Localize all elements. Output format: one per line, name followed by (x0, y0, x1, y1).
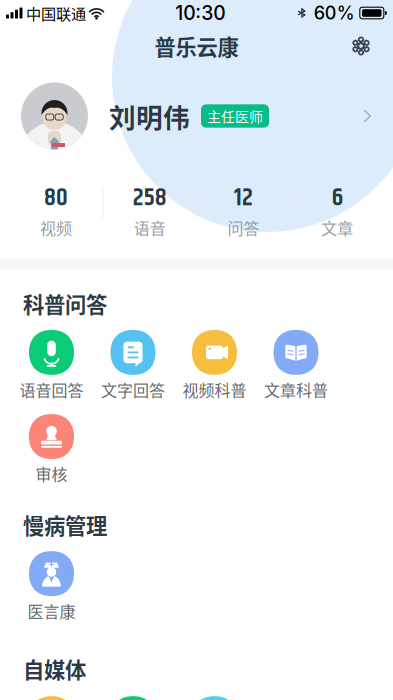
staticText: 文字回答 (101, 378, 165, 401)
button[interactable]: 视频科普 (174, 330, 255, 401)
button[interactable] (11, 696, 92, 700)
staticText: 258 (133, 179, 167, 217)
staticText: 文章科普 (264, 378, 328, 401)
button[interactable] (92, 696, 174, 700)
staticText: 10:30 (175, 1, 225, 25)
staticText: 问答 (227, 216, 259, 239)
staticText: 视频科普 (182, 378, 246, 401)
staticText: 自媒体 (23, 653, 86, 684)
staticText: 医言康 (27, 599, 75, 622)
button[interactable] (174, 696, 255, 700)
button[interactable]: 医言康 (11, 551, 92, 622)
staticText: 普乐云康 (154, 31, 238, 61)
button[interactable]: 12 (196, 187, 290, 239)
button[interactable]: 6 (290, 187, 384, 239)
button[interactable]: 258 (103, 187, 197, 239)
button[interactable]: 文章科普 (255, 330, 337, 401)
button[interactable]: 文字回答 (92, 330, 174, 401)
button[interactable]: 80 (9, 187, 103, 239)
staticText: 80 (44, 179, 68, 217)
staticText: 刘明伟 (109, 97, 190, 135)
staticText: 视频 (40, 216, 72, 239)
staticText: 文章 (321, 216, 353, 239)
staticText: 慢病管理 (23, 509, 107, 540)
staticText: 主任医师 (207, 106, 263, 126)
staticText: 语音 (134, 216, 166, 239)
button[interactable]: 语音回答 (11, 330, 92, 401)
button[interactable]: 设置 (339, 26, 383, 66)
button[interactable]: 刘明伟 (0, 66, 393, 166)
button[interactable]: 审核 (11, 414, 92, 485)
staticText: 6 (332, 179, 343, 217)
staticText: 语音回答 (19, 378, 83, 401)
staticText: 科普问答 (23, 288, 107, 319)
staticText: 中国联通 (26, 2, 86, 24)
staticText: 审核 (35, 462, 67, 485)
staticText: 12 (234, 179, 253, 217)
staticText: 60% (314, 2, 355, 24)
